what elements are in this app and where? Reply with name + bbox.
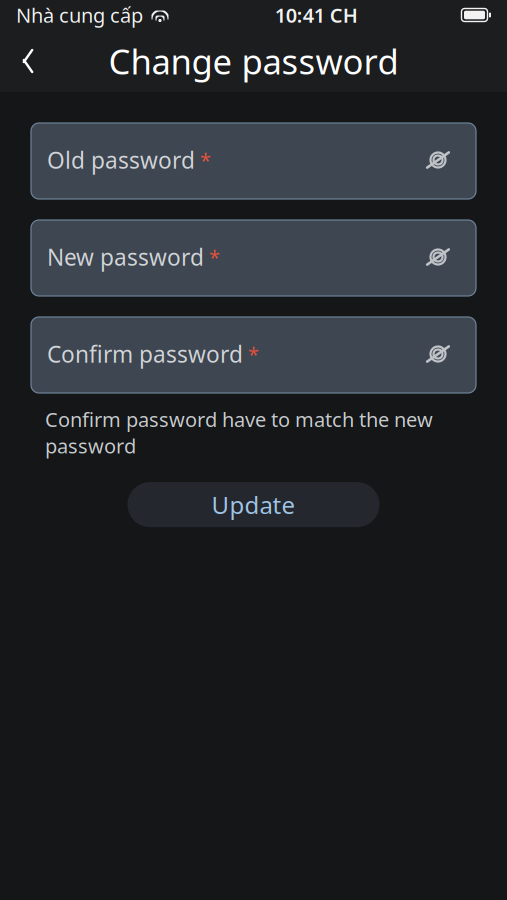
staticText: Confirm password	[47, 339, 243, 369]
staticText: New password	[47, 242, 204, 272]
staticText: *	[248, 341, 259, 367]
button[interactable]: Show Confirm password	[416, 332, 460, 376]
button[interactable]: Show New password	[416, 235, 460, 279]
staticText: *	[209, 244, 220, 270]
staticText: Old password	[47, 145, 195, 175]
button[interactable]: Back	[6, 39, 50, 83]
button[interactable]: Update	[127, 482, 379, 527]
button[interactable]: Show Old password	[416, 138, 460, 182]
staticText: 10:41 CH	[275, 2, 358, 28]
staticText: *	[200, 147, 211, 173]
staticText: Nhà cung cấp	[16, 2, 143, 28]
staticText: Change password	[108, 38, 398, 84]
staticText: Update	[211, 489, 295, 521]
staticText: Confirm password have to match the new p…	[45, 406, 433, 459]
